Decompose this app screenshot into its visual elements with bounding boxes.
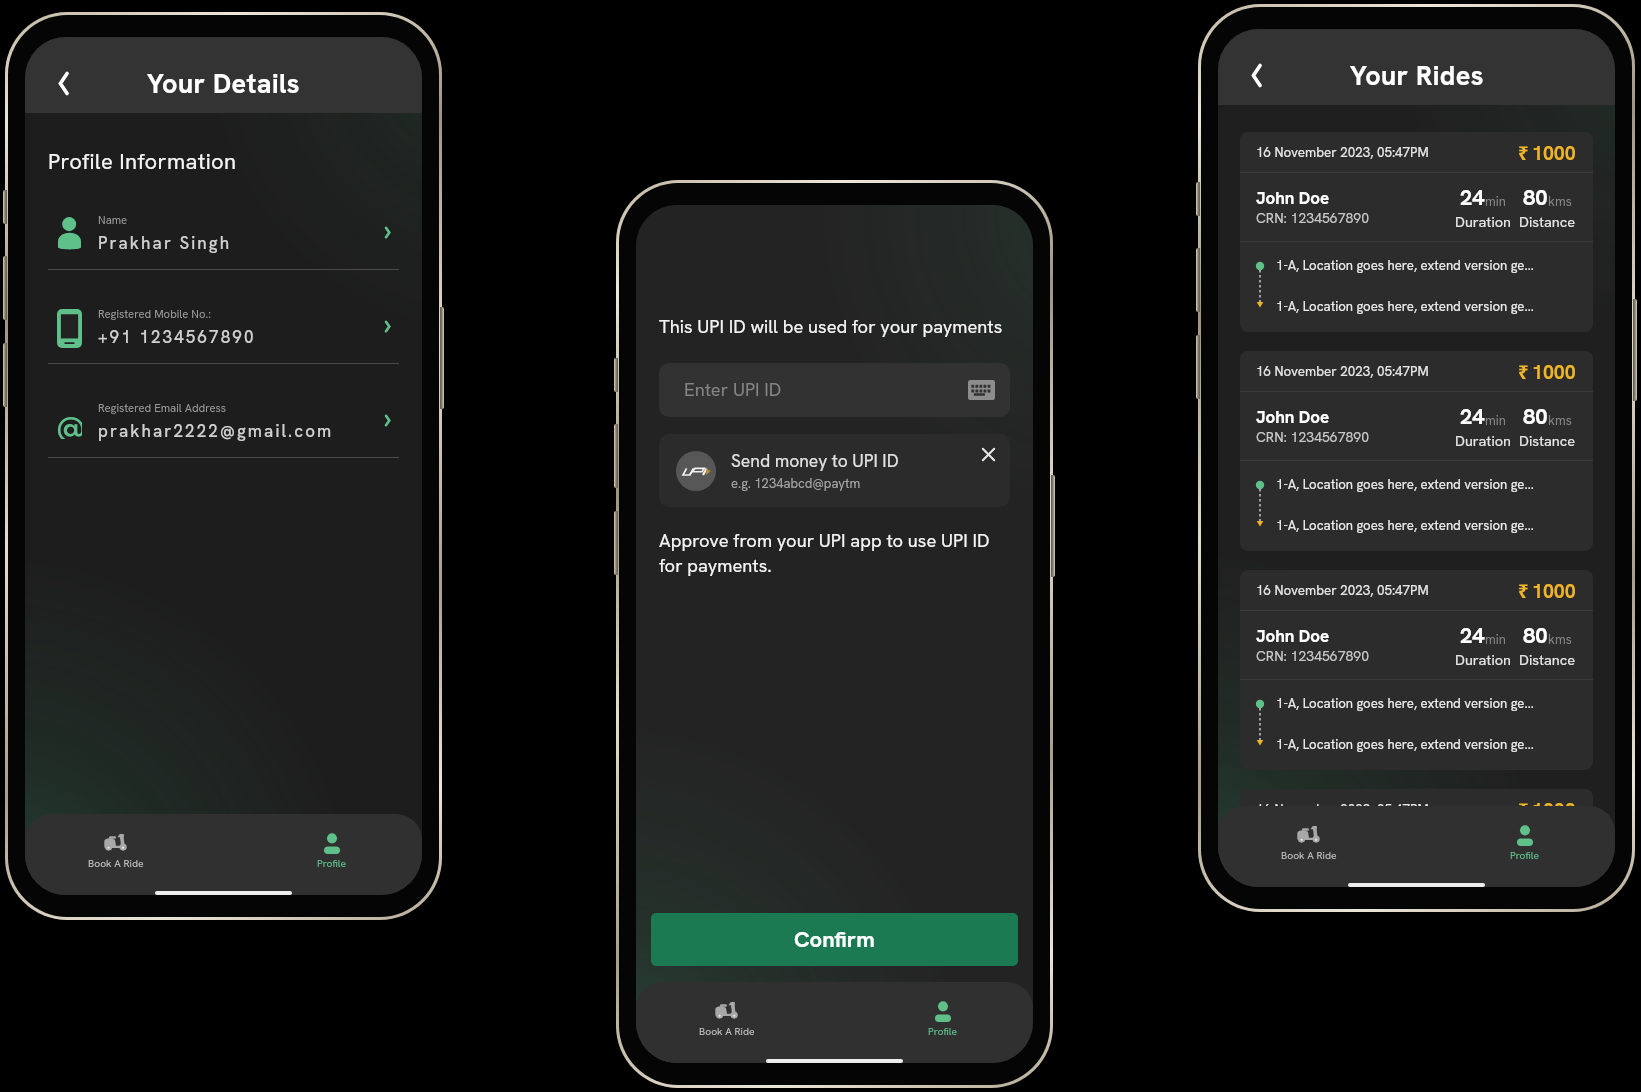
staticText: 24 xyxy=(1460,183,1485,212)
staticText: Confirm xyxy=(794,925,875,954)
staticText: min xyxy=(1485,193,1506,210)
button[interactable]: Profile xyxy=(834,982,1033,1063)
staticText: Duration xyxy=(1455,212,1511,231)
staticText: ₹ xyxy=(1518,797,1529,822)
button[interactable]: Back xyxy=(1241,59,1273,91)
staticText: This UPI ID will be used for your paymen… xyxy=(659,315,1003,339)
button[interactable]: Book A Ride xyxy=(636,982,834,1063)
staticText: Send money to UPI ID xyxy=(731,449,899,472)
staticText: +91 1234567890 xyxy=(98,326,256,348)
staticText: Your Details xyxy=(147,66,300,101)
button[interactable]: Enter UPI ID xyxy=(659,363,1010,417)
staticText: kms xyxy=(1548,412,1572,429)
staticText: Prakhar Singh xyxy=(98,232,232,254)
staticText: Approve from your UPI app to use UPI ID … xyxy=(659,529,1007,578)
staticText: 1-A, Location goes here, extend version … xyxy=(1276,695,1534,712)
staticText: 24 xyxy=(1460,621,1485,650)
staticText: Profile xyxy=(317,857,346,870)
staticText: 1-A, Location goes here, extend version … xyxy=(1276,476,1534,493)
staticText: e.g. 1234abcd@paytm xyxy=(731,475,861,492)
staticText: 16 November 2023, 05:47PM xyxy=(1256,363,1518,380)
staticText: min xyxy=(1485,412,1506,429)
staticText: min xyxy=(1485,631,1506,648)
staticText: 1-A, Location goes here, extend version … xyxy=(1276,736,1534,753)
staticText: Name xyxy=(98,213,128,228)
staticText: Enter UPI ID xyxy=(684,378,782,402)
staticText: CRN: 1234567890 xyxy=(1256,428,1370,446)
staticText: Registered Email Address xyxy=(98,401,227,416)
staticText: 80 xyxy=(1523,835,1548,864)
staticText: @ xyxy=(56,405,82,439)
staticText: Duration xyxy=(1455,431,1511,450)
button[interactable]: Send money to UPI ID xyxy=(659,434,1010,507)
staticText: ₹ xyxy=(1518,359,1529,384)
staticText: 1-A, Location goes here, extend version … xyxy=(1276,298,1534,315)
button[interactable]: Dismiss xyxy=(976,442,1000,466)
staticText: Book A Ride xyxy=(88,857,144,870)
staticText: 1-A, Location goes here, extend version … xyxy=(1276,257,1534,274)
staticText: John Doe xyxy=(1256,187,1330,209)
staticText: Duration xyxy=(1455,650,1511,669)
staticText: 1000 xyxy=(1532,578,1576,603)
staticText: Your Rides xyxy=(1350,58,1484,93)
staticText: Profile xyxy=(928,1025,957,1038)
staticText: ₹ xyxy=(1518,140,1529,165)
staticText: Profile xyxy=(1510,849,1539,862)
staticText: Book A Ride xyxy=(1281,849,1337,862)
button[interactable]: Book A Ride xyxy=(25,814,223,895)
staticText: prakhar2222@gmail.com xyxy=(98,420,334,442)
staticText: 1000 xyxy=(1532,359,1576,384)
button[interactable]: Confirm xyxy=(651,913,1018,966)
staticText: CRN: 1234567890 xyxy=(1256,647,1370,665)
staticText: CRN: 1234567890 xyxy=(1256,209,1370,227)
button[interactable]: Back xyxy=(48,67,80,99)
staticText: 1-A, Location goes here, extend version … xyxy=(1276,517,1534,534)
staticText: Registered Mobile No.: xyxy=(98,307,211,322)
staticText: 16 November 2023, 05:47PM xyxy=(1256,801,1518,818)
staticText: Distance xyxy=(1519,650,1576,669)
staticText: 16 November 2023, 05:47PM xyxy=(1256,144,1518,161)
staticText: 1000 xyxy=(1532,797,1576,822)
staticText: John Doe xyxy=(1256,839,1330,861)
staticText: 24 xyxy=(1460,402,1485,431)
staticText: 80 xyxy=(1523,621,1548,650)
staticText: John Doe xyxy=(1256,406,1330,428)
staticText: 1000 xyxy=(1532,140,1576,165)
staticText: Distance xyxy=(1519,431,1576,450)
staticText: kms xyxy=(1548,631,1572,648)
button[interactable]: Name xyxy=(25,176,422,269)
button[interactable]: 16 November 2023, 05:47PM xyxy=(1240,351,1593,551)
button[interactable]: Profile xyxy=(1416,806,1615,887)
button[interactable]: 16 November 2023, 05:47PM xyxy=(1240,789,1593,887)
staticText: Distance xyxy=(1519,212,1576,231)
button[interactable]: 16 November 2023, 05:47PM xyxy=(1240,132,1593,332)
staticText: 80 xyxy=(1523,402,1548,431)
staticText: ₹ xyxy=(1518,578,1529,603)
staticText: John Doe xyxy=(1256,625,1330,647)
staticText: Book A Ride xyxy=(699,1025,755,1038)
staticText: 16 November 2023, 05:47PM xyxy=(1256,582,1518,599)
button[interactable]: Registered Mobile No.: xyxy=(25,270,422,363)
button[interactable]: 16 November 2023, 05:47PM xyxy=(1240,570,1593,770)
staticText: Profile Information xyxy=(48,147,237,176)
button[interactable]: Book A Ride xyxy=(1218,806,1416,887)
button[interactable]: @ xyxy=(25,364,422,457)
staticText: 80 xyxy=(1523,183,1548,212)
button[interactable]: Profile xyxy=(223,814,422,895)
staticText: kms xyxy=(1548,193,1572,210)
